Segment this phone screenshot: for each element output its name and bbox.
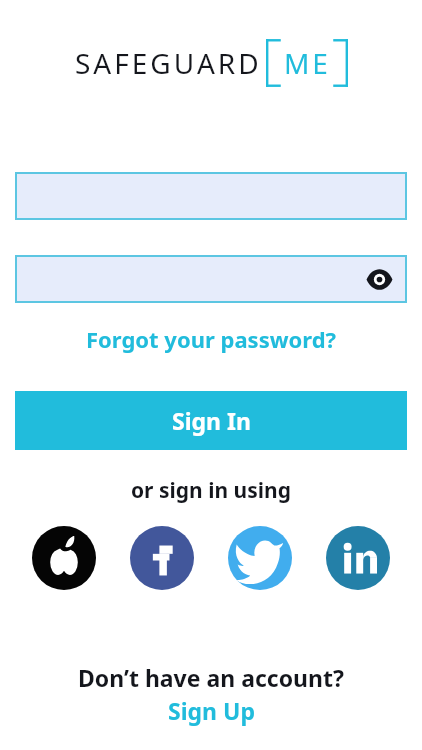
staticText: Sign In <box>172 405 251 436</box>
button[interactable]: Sign Up <box>0 695 422 726</box>
staticText: ME <box>284 44 331 82</box>
button[interactable]: Sign in with Apple <box>32 526 96 590</box>
staticText: SAFEGUARD <box>75 44 262 82</box>
staticText: Sign Up <box>168 695 255 726</box>
button[interactable]: Sign in with LinkedIn <box>326 526 390 590</box>
staticText: or sign in using <box>131 476 291 505</box>
button[interactable]: Sign In <box>15 391 407 450</box>
button[interactable] <box>15 172 407 220</box>
staticText: Forgot your password? <box>86 324 337 354</box>
staticText: Don’t have an account? <box>78 662 344 693</box>
button[interactable]: Show password <box>15 255 407 303</box>
button[interactable]: Sign in with Facebook <box>130 526 194 590</box>
button[interactable]: Sign in with Twitter <box>228 526 292 590</box>
button[interactable]: Show password <box>362 262 396 296</box>
button[interactable]: Forgot your password? <box>0 320 422 358</box>
